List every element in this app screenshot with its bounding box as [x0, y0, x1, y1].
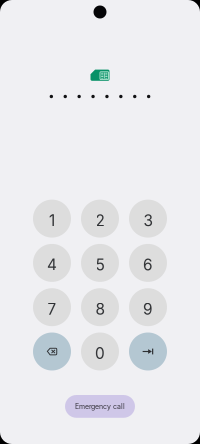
button[interactable]: Submit — [129, 332, 167, 370]
staticText: 1 — [49, 211, 55, 230]
button[interactable]: 1 — [33, 200, 71, 238]
button[interactable]: Delete — [33, 332, 71, 370]
button[interactable]: 8 — [81, 288, 119, 326]
staticText: Emergency call — [75, 402, 125, 411]
staticText: 3 — [143, 211, 152, 230]
button[interactable]: 3 — [129, 200, 167, 238]
button[interactable]: 4 — [33, 244, 71, 282]
staticText: 2 — [95, 211, 104, 230]
button[interactable]: 7 — [33, 288, 71, 326]
staticText: 0 — [95, 344, 105, 363]
staticText: 7 — [47, 300, 56, 318]
staticText: 9 — [143, 300, 153, 318]
staticText: 5 — [95, 256, 104, 274]
button[interactable]: Emergency call — [65, 395, 135, 418]
staticText: 8 — [95, 300, 104, 318]
button[interactable]: 5 — [81, 244, 119, 282]
staticText: 6 — [143, 256, 153, 274]
button[interactable]: 9 — [129, 288, 167, 326]
button[interactable]: 6 — [129, 244, 167, 282]
staticText: 4 — [47, 256, 57, 274]
button[interactable]: 0 — [81, 332, 119, 370]
button[interactable]: 2 — [81, 200, 119, 238]
